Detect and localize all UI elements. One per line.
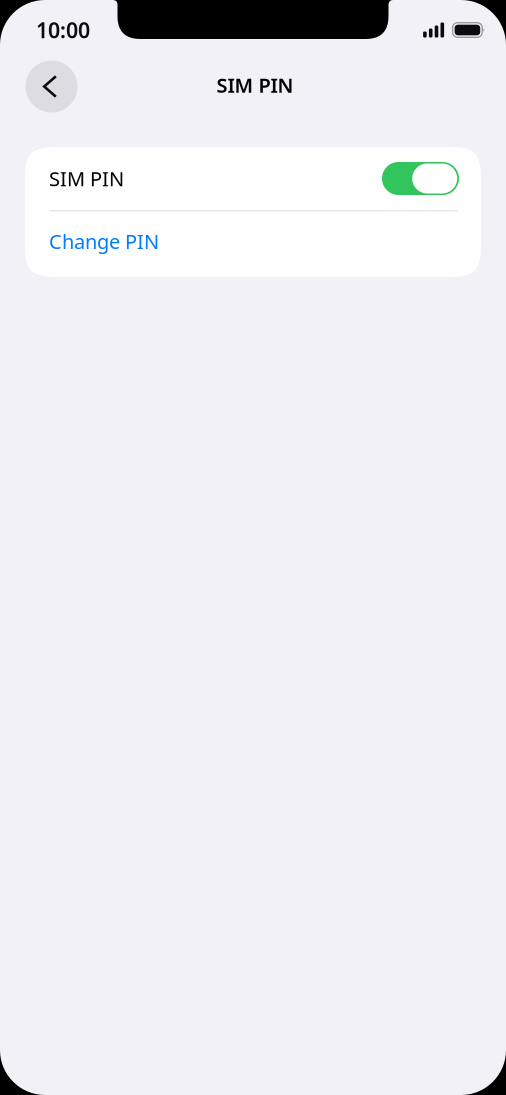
- staticText: Change PIN: [49, 228, 159, 254]
- staticText: SIM PIN: [49, 165, 124, 192]
- button[interactable]: Back: [25, 60, 77, 112]
- button[interactable]: Change PIN: [25, 211, 481, 277]
- staticText: 10:00: [36, 16, 90, 44]
- staticText: SIM PIN: [216, 72, 293, 98]
- button[interactable]: SIM PIN: [25, 147, 481, 210]
